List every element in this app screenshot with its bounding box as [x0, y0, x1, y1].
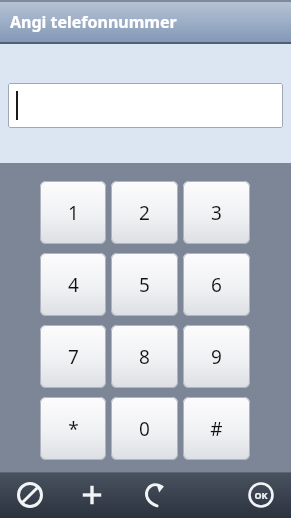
button[interactable]: 6 [183, 253, 250, 316]
staticText: 8 [139, 344, 150, 370]
staticText: * [68, 416, 79, 442]
button[interactable]: Add plus [72, 473, 112, 517]
staticText: 5 [139, 272, 150, 298]
staticText: Angi telefonnummer [10, 11, 177, 33]
button[interactable]: 7 [40, 325, 106, 388]
button[interactable]: * [40, 397, 106, 460]
staticText: 9 [211, 344, 222, 370]
staticText: 7 [68, 344, 79, 370]
button[interactable]: Clear [10, 473, 50, 517]
staticText: 6 [211, 272, 222, 298]
button[interactable] [8, 83, 283, 128]
button[interactable]: # [183, 397, 250, 460]
staticText: OK [254, 489, 268, 501]
staticText: 2 [139, 200, 150, 226]
button[interactable]: Call [134, 473, 174, 517]
button[interactable]: 9 [183, 325, 250, 388]
button[interactable]: 5 [111, 253, 178, 316]
staticText: # [210, 416, 223, 442]
button[interactable]: 3 [183, 181, 250, 244]
button[interactable]: 4 [40, 253, 106, 316]
button[interactable]: 1 [40, 181, 106, 244]
staticText: 3 [211, 200, 222, 226]
button[interactable]: 2 [111, 181, 178, 244]
button[interactable]: OK [241, 473, 281, 517]
button[interactable]: 0 [111, 397, 178, 460]
staticText: 1 [68, 200, 79, 226]
staticText: 4 [68, 272, 79, 298]
staticText: 0 [139, 416, 150, 442]
button[interactable]: 8 [111, 325, 178, 388]
